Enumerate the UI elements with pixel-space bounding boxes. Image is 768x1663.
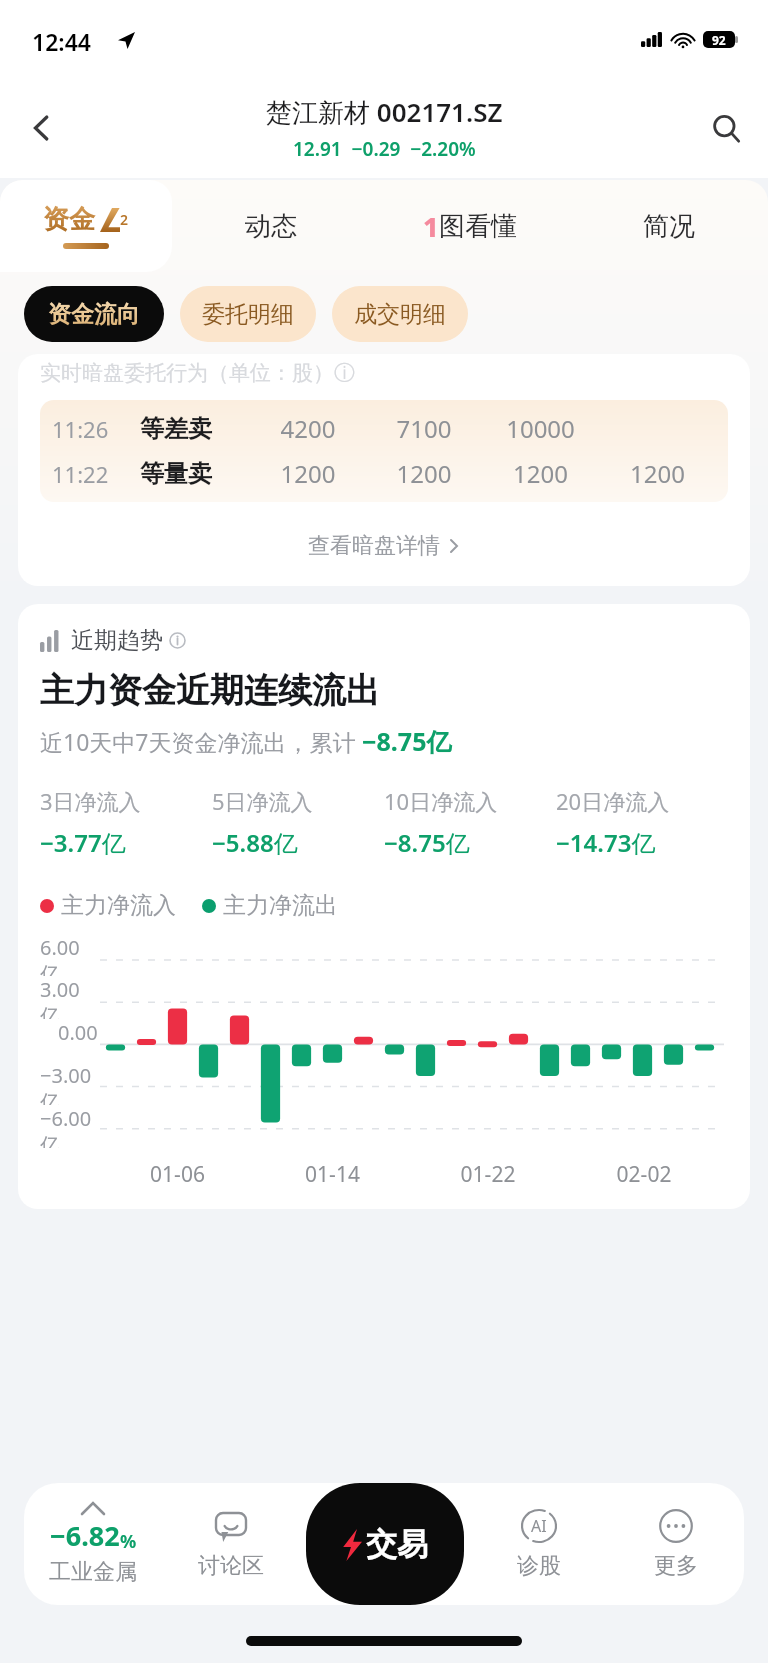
- staticText: 01-14: [255, 1160, 410, 1189]
- staticText: 1200: [366, 457, 482, 490]
- staticText: AI: [531, 1515, 547, 1537]
- button[interactable]: 委托明细: [202, 286, 294, 342]
- staticText: −8.75亿: [384, 826, 470, 859]
- staticText: 12.91 −0.29 −2.20%: [293, 136, 476, 162]
- staticText: −14.73亿: [556, 826, 656, 859]
- staticText: 10日净流入: [384, 786, 498, 816]
- staticText: 动态: [245, 210, 297, 243]
- staticText: 主力净流入: [61, 891, 176, 920]
- staticText: −3.00亿: [40, 1062, 98, 1105]
- staticText: 92: [712, 32, 726, 48]
- staticText: 诊股: [517, 1552, 561, 1580]
- button[interactable]: 资金流向: [48, 286, 140, 342]
- staticText: 12:44: [32, 26, 91, 57]
- button[interactable]: AI: [470, 1483, 607, 1605]
- staticText: 主力资金近期连续流出: [40, 669, 380, 712]
- button[interactable]: −6.82: [24, 1483, 162, 1605]
- button[interactable]: 简况: [569, 180, 768, 272]
- staticText: 查看暗盘详情: [308, 532, 440, 560]
- staticText: 1: [423, 208, 439, 245]
- staticText: −5.88亿: [212, 826, 298, 859]
- staticText: 3.00亿: [40, 976, 98, 1019]
- button[interactable]: 1: [370, 180, 569, 272]
- staticText: 4200: [250, 412, 366, 445]
- button[interactable]: Search: [698, 100, 754, 156]
- button[interactable]: 成交明细: [354, 286, 446, 342]
- staticText: 11:26: [52, 414, 140, 444]
- button[interactable]: 查看暗盘详情: [18, 532, 750, 560]
- staticText: 讨论区: [198, 1552, 264, 1580]
- staticText: 20日净流入: [556, 786, 670, 816]
- staticText: 简况: [643, 210, 695, 243]
- staticText: 图看懂: [439, 210, 517, 243]
- button[interactable]: 讨论区: [162, 1483, 299, 1605]
- staticText: −8.75亿: [362, 724, 452, 758]
- button[interactable]: Back: [14, 100, 70, 156]
- button[interactable]: 资金: [0, 180, 172, 272]
- staticText: 3日净流入: [40, 786, 141, 816]
- staticText: 资金流向: [48, 300, 140, 329]
- staticText: 成交明细: [354, 300, 446, 329]
- staticText: 1200: [250, 457, 366, 490]
- staticText: 6.00亿: [40, 934, 98, 976]
- staticText: 更多: [654, 1552, 698, 1580]
- button[interactable]: 动态: [172, 180, 370, 272]
- staticText: 7100: [366, 412, 482, 445]
- staticText: 10000: [482, 412, 599, 445]
- button[interactable]: 更多: [607, 1483, 744, 1605]
- staticText: 0.00: [58, 1019, 98, 1046]
- staticText: 资金: [43, 203, 95, 236]
- staticText: 01-06: [100, 1160, 255, 1189]
- staticText: 01-22: [410, 1160, 566, 1189]
- staticText: 主力净流出: [223, 891, 338, 920]
- staticText: −3.77亿: [40, 826, 126, 859]
- staticText: 2: [120, 210, 129, 229]
- staticText: 1200: [482, 457, 599, 490]
- button[interactable]: 交易: [306, 1483, 464, 1605]
- staticText: 5日净流入: [212, 786, 313, 816]
- staticText: 实时暗盘委托行为（单位：股）ⓘ: [40, 360, 355, 386]
- staticText: −6.82: [50, 1517, 120, 1554]
- staticText: 交易: [366, 1525, 428, 1564]
- staticText: %: [120, 1529, 137, 1554]
- staticText: 楚江新材 002171.SZ: [266, 94, 503, 130]
- staticText: 近10天中7天资金净流出，累计: [40, 726, 362, 757]
- staticText: 委托明细: [202, 300, 294, 329]
- staticText: 工业金属: [49, 1558, 137, 1586]
- staticText: −6.00亿: [40, 1105, 98, 1148]
- staticText: 02-02: [566, 1160, 722, 1189]
- staticText: 近期趋势: [71, 626, 163, 655]
- staticText: 11:22: [52, 459, 140, 489]
- staticText: 等差卖: [140, 414, 250, 444]
- staticText: 等量卖: [140, 459, 250, 489]
- staticText: 1200: [599, 457, 716, 490]
